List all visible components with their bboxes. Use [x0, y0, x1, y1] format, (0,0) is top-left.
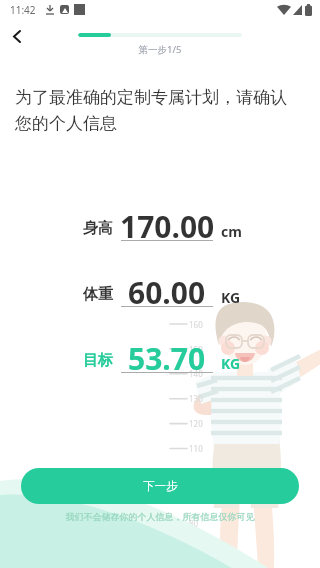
staticText: 170.00 — [120, 206, 215, 247]
staticText: 160 — [189, 319, 203, 330]
staticText: 120 — [189, 418, 203, 429]
staticText: 我们不会储存你的个人信息，所有信息仅你可见 — [0, 511, 320, 522]
staticText: KG — [221, 354, 241, 373]
staticText: 第一步1/5 — [0, 43, 320, 56]
staticText: 为了最准确的定制专属计划，请确认 您的个人信息 — [15, 87, 287, 134]
staticText: 130 — [189, 393, 203, 404]
staticText: 150 — [189, 344, 203, 355]
staticText: 80 — [189, 518, 199, 529]
staticText: 目标 — [83, 351, 113, 370]
staticText: 53.70 — [128, 338, 206, 379]
staticText: 60.00 — [128, 272, 206, 313]
staticText: KG — [221, 288, 241, 307]
staticText: 110 — [189, 443, 203, 454]
staticText: 体重 — [83, 285, 113, 304]
staticText: 140 — [189, 368, 203, 379]
staticText: 70 — [189, 543, 199, 554]
button[interactable]: 下一步 — [21, 468, 299, 504]
staticText: 11:42 — [10, 3, 36, 17]
button[interactable]: Back — [2, 21, 32, 51]
staticText: 下一步 — [143, 479, 178, 493]
staticText: cm — [221, 222, 242, 241]
staticText: 身高 — [83, 219, 113, 238]
